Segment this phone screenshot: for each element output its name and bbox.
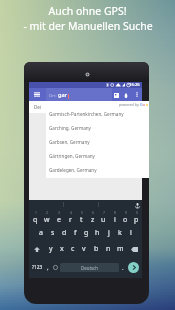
staticText: j bbox=[108, 228, 110, 238]
button[interactable]: Gärtringen, Germany bbox=[46, 149, 149, 163]
button[interactable]: x bbox=[56, 241, 67, 257]
staticText: 1 bbox=[35, 210, 37, 215]
staticText: Dei bbox=[34, 104, 42, 110]
staticText: Gardelegen, Germany bbox=[49, 167, 97, 173]
button[interactable]: Shift bbox=[29, 241, 45, 257]
button[interactable]: l bbox=[125, 225, 136, 241]
staticText: Auch ohne GPS! bbox=[48, 4, 127, 18]
button[interactable]: c bbox=[67, 241, 78, 257]
staticText: x bbox=[60, 244, 64, 254]
staticText: n bbox=[106, 244, 111, 254]
button[interactable]: 2 bbox=[41, 209, 53, 225]
button[interactable]: 9 bbox=[120, 209, 131, 225]
button[interactable]: Search bbox=[126, 257, 141, 278]
staticText: s bbox=[51, 228, 55, 238]
staticText: k bbox=[118, 228, 122, 238]
staticText: l bbox=[130, 228, 132, 238]
staticText: q bbox=[33, 215, 38, 225]
staticText: 0 bbox=[136, 210, 138, 215]
button[interactable]: m bbox=[114, 241, 126, 257]
button[interactable]: Garching, Germany bbox=[46, 121, 149, 135]
staticText: r bbox=[69, 215, 72, 225]
staticText: gar bbox=[58, 91, 68, 99]
staticText: 4 bbox=[70, 210, 72, 215]
staticText: Ort: bbox=[49, 93, 57, 99]
button[interactable]: Emoji bbox=[51, 257, 60, 278]
button[interactable]: Map layers bbox=[112, 91, 120, 99]
staticText: Garching, Germany bbox=[49, 125, 91, 131]
staticText: i bbox=[114, 215, 116, 225]
button[interactable]: , bbox=[44, 257, 51, 278]
staticText: Deutsch bbox=[81, 265, 98, 271]
button[interactable]: Voice input bbox=[133, 201, 141, 209]
staticText: v bbox=[82, 244, 86, 254]
staticText: u bbox=[101, 215, 106, 225]
button[interactable]: v bbox=[78, 241, 90, 257]
button[interactable]: k bbox=[114, 225, 125, 241]
button[interactable]: Garmisch-Partenkirchen, Germany bbox=[46, 107, 149, 121]
staticText: Garbsen, Germany bbox=[49, 139, 90, 145]
staticText: h bbox=[95, 228, 100, 238]
staticText: - mit der Manuellen Suche bbox=[23, 19, 153, 33]
button[interactable]: ?123 bbox=[30, 257, 44, 278]
staticText: , bbox=[47, 264, 49, 272]
button[interactable]: Deutsch bbox=[60, 263, 119, 272]
staticText: powered by bbox=[119, 102, 140, 107]
button[interactable]: . bbox=[119, 257, 126, 278]
button[interactable]: h bbox=[92, 225, 103, 241]
staticText: . bbox=[122, 264, 124, 272]
staticText: o bbox=[146, 102, 149, 107]
staticText: 7 bbox=[103, 210, 105, 215]
staticText: a bbox=[39, 228, 43, 238]
button[interactable]: Menu bbox=[32, 90, 41, 99]
button[interactable]: j bbox=[103, 225, 114, 241]
staticText: d bbox=[62, 228, 67, 238]
button[interactable]: 0 bbox=[131, 209, 142, 225]
button[interactable]: d bbox=[59, 225, 70, 241]
staticText: f bbox=[74, 228, 77, 238]
staticText: 8 bbox=[114, 210, 116, 215]
staticText: m bbox=[117, 244, 124, 254]
staticText: 3 bbox=[58, 210, 60, 215]
staticText: t bbox=[80, 215, 83, 225]
button[interactable]: More options bbox=[133, 91, 140, 98]
staticText: ?123 bbox=[32, 264, 43, 271]
button[interactable]: 3 bbox=[53, 209, 65, 225]
button[interactable]: Ort: bbox=[46, 88, 112, 101]
button[interactable]: 4 bbox=[65, 209, 76, 225]
button[interactable]: a bbox=[35, 225, 47, 241]
button[interactable]: y bbox=[45, 241, 56, 257]
button[interactable]: s bbox=[47, 225, 59, 241]
button[interactable]: g bbox=[81, 225, 92, 241]
staticText: b bbox=[94, 244, 99, 254]
button[interactable]: b bbox=[90, 241, 102, 257]
staticText: G bbox=[140, 102, 143, 107]
button[interactable]: 8 bbox=[109, 209, 120, 225]
staticText: w bbox=[44, 215, 50, 225]
staticText: p bbox=[134, 215, 139, 225]
staticText: o bbox=[123, 215, 128, 225]
button[interactable]: Garbsen, Germany bbox=[46, 135, 149, 149]
staticText: Garmisch-Partenkirchen, Germany bbox=[49, 111, 124, 117]
button[interactable]: f bbox=[70, 225, 81, 241]
staticText: 6 bbox=[92, 210, 94, 215]
button[interactable]: 1 bbox=[29, 209, 41, 225]
staticText: Gärtringen, Germany bbox=[49, 153, 95, 159]
button[interactable]: Backspace bbox=[126, 241, 142, 257]
staticText: c bbox=[71, 244, 75, 254]
staticText: z bbox=[91, 215, 95, 225]
staticText: y bbox=[49, 244, 53, 254]
staticText: g bbox=[84, 228, 89, 238]
staticText: 5 bbox=[81, 210, 83, 215]
button[interactable]: 6 bbox=[87, 209, 98, 225]
button[interactable]: My location bbox=[122, 91, 130, 99]
staticText: 16:26 bbox=[129, 82, 140, 88]
staticText: 2 bbox=[46, 210, 48, 215]
button[interactable]: 7 bbox=[98, 209, 109, 225]
button[interactable]: n bbox=[102, 241, 114, 257]
staticText: o bbox=[143, 102, 146, 107]
button[interactable]: 5 bbox=[76, 209, 87, 225]
button[interactable]: Gardelegen, Germany bbox=[46, 163, 149, 177]
staticText: e bbox=[57, 215, 61, 225]
staticText: 9 bbox=[125, 210, 127, 215]
